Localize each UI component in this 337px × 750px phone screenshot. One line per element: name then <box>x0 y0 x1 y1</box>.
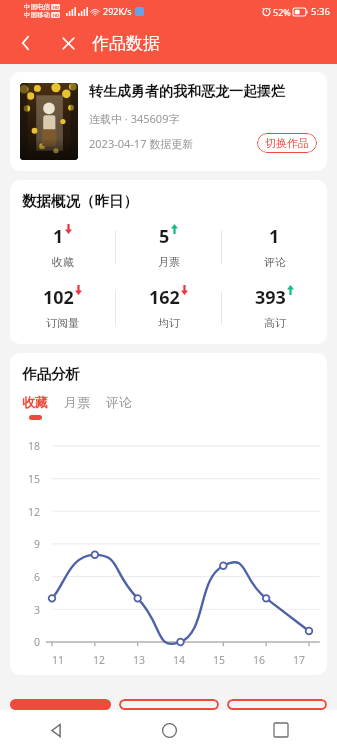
staticText: 18 <box>10 439 40 453</box>
staticText: 15 <box>213 653 226 667</box>
button[interactable]: 5 <box>116 224 221 269</box>
staticText: 转生成勇者的我和恶龙一起摆烂 <box>89 83 285 101</box>
button[interactable]: 收藏 <box>22 394 48 420</box>
staticText: 9 <box>10 537 40 551</box>
button[interactable]: Back <box>10 27 42 59</box>
button[interactable]: 切换作品 <box>257 133 317 153</box>
button[interactable]: 102 <box>10 285 115 330</box>
staticText: 102 <box>43 285 74 310</box>
staticText: 11 <box>52 653 65 667</box>
staticText: 14 <box>173 653 186 667</box>
staticText: 切换作品 <box>265 136 309 150</box>
staticText: 6 <box>10 570 40 584</box>
button[interactable]: Back <box>0 710 113 750</box>
button[interactable]: Close <box>52 27 84 59</box>
staticText: 0 <box>10 635 40 649</box>
staticText: 评论 <box>106 394 132 410</box>
staticText: 12 <box>93 653 106 667</box>
button[interactable]: Home <box>113 710 225 750</box>
staticText: 作品数据 <box>92 33 160 54</box>
button[interactable]: 转生成勇者的我和恶龙一起摆烂 <box>10 72 327 171</box>
button[interactable]: Recents <box>225 710 337 750</box>
staticText: 均订 <box>158 316 180 330</box>
button[interactable]: 1 <box>222 224 327 269</box>
staticText: 连载中 · 345609字 <box>89 111 180 126</box>
staticText: HD <box>53 13 59 18</box>
staticText: 17 <box>293 653 306 667</box>
staticText: 12 <box>10 505 40 519</box>
staticText: 292K/s <box>103 5 132 17</box>
button[interactable]: 1 <box>10 224 115 269</box>
staticText: 月票 <box>158 255 180 269</box>
staticText: 中国电信 <box>24 3 50 11</box>
staticText: HD <box>53 5 59 10</box>
staticText: 月票 <box>64 394 90 410</box>
staticText: 2023-04-17 数据更新 <box>89 136 194 151</box>
staticText: 15 <box>10 472 40 486</box>
staticText: 订阅量 <box>46 316 79 330</box>
staticText: 作品分析 <box>22 365 80 383</box>
button[interactable]: 次要操作二 <box>227 699 327 710</box>
staticText: 评论 <box>264 255 286 269</box>
staticText: 高订 <box>264 316 286 330</box>
staticText: 3 <box>10 603 40 617</box>
button[interactable]: 月票 <box>64 394 90 420</box>
button[interactable]: 393 <box>222 285 327 330</box>
staticText: 5:36 <box>311 5 330 18</box>
staticText: 52% <box>273 6 291 18</box>
staticText: 5 <box>159 224 170 249</box>
button[interactable]: 次要操作一 <box>119 699 219 710</box>
staticText: 收藏 <box>22 394 48 410</box>
staticText: 1 <box>53 224 64 249</box>
staticText: 1 <box>269 224 280 249</box>
button[interactable]: 评论 <box>106 394 132 420</box>
staticText: 13 <box>133 653 146 667</box>
button[interactable]: 162 <box>116 285 221 330</box>
staticText: 393 <box>255 285 286 310</box>
staticText: 中国移动 <box>24 11 50 19</box>
staticText: 数据概况（昨日） <box>22 192 138 210</box>
staticText: 16 <box>253 653 266 667</box>
staticText: 162 <box>149 285 180 310</box>
staticText: 收藏 <box>52 255 74 269</box>
button[interactable]: 主要操作 <box>10 699 111 710</box>
